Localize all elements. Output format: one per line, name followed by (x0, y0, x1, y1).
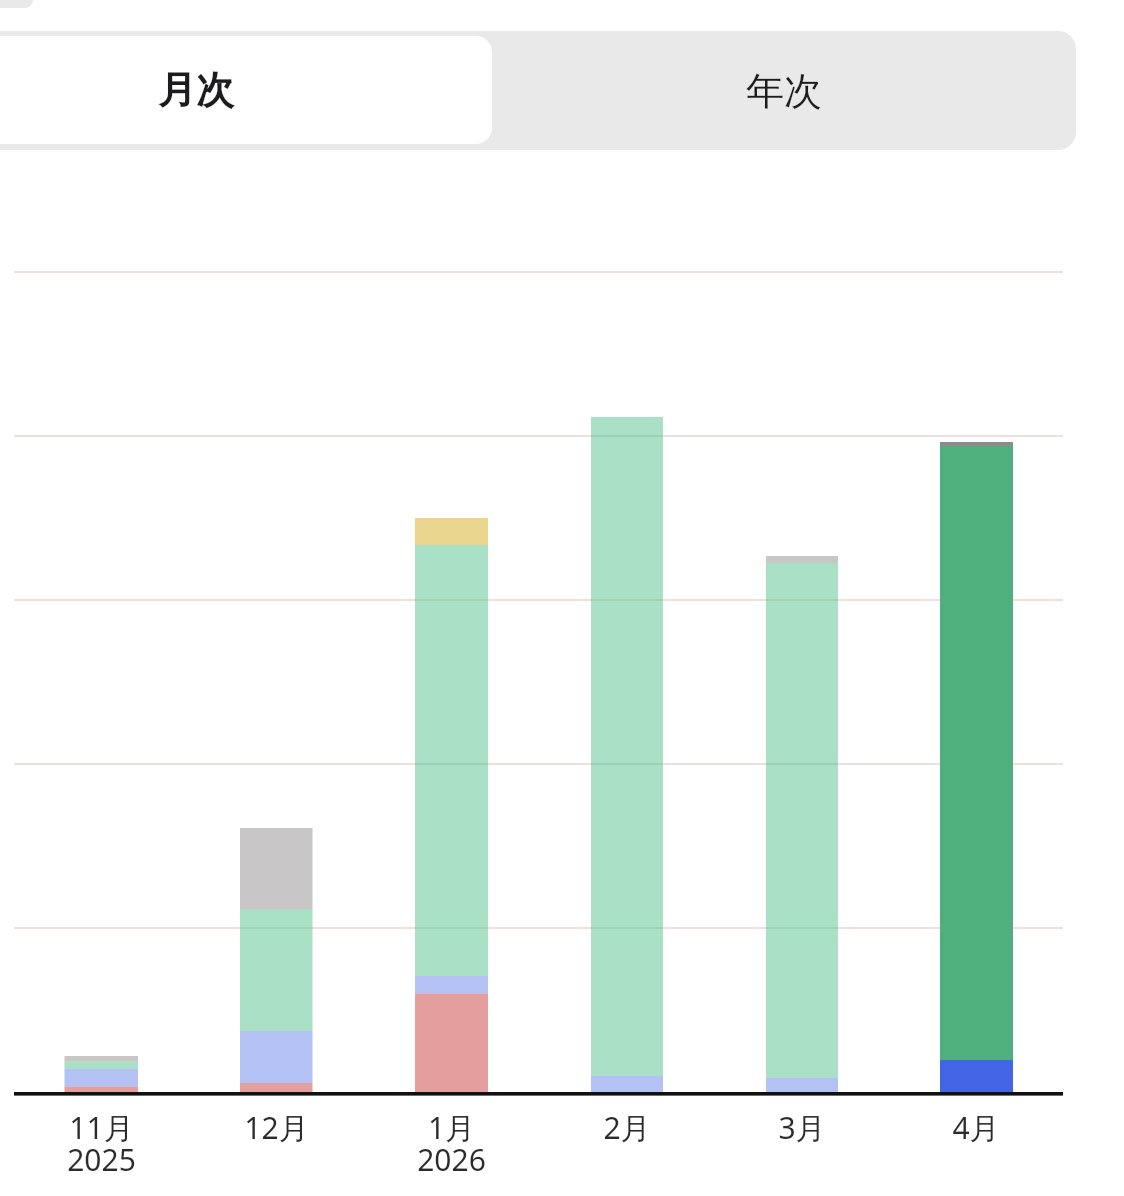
staticText: 11月 2025 (67, 1107, 136, 1179)
staticText: 1月 2026 (417, 1107, 486, 1179)
staticText: 3月 (778, 1107, 826, 1148)
staticText: 12月 (244, 1107, 309, 1148)
staticText: 年次 (746, 67, 822, 115)
staticText: 2月 (603, 1107, 651, 1148)
button[interactable]: 月次 (0, 36, 492, 144)
button[interactable]: 年次 (492, 31, 1076, 150)
staticText: 4月 (952, 1107, 1000, 1148)
staticText: 月次 (158, 66, 234, 114)
